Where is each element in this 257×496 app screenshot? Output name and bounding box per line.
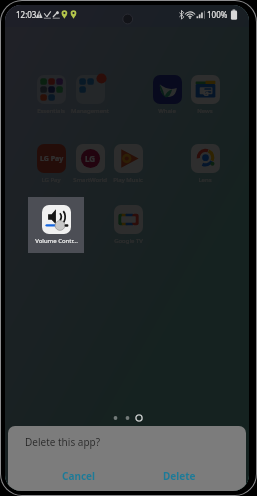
button[interactable]: Essentials — [23, 68, 79, 115]
button[interactable]: Management — [62, 68, 118, 115]
button[interactable]: Play Music — [100, 137, 156, 184]
button[interactable]: Cancel — [8, 464, 149, 488]
staticText: Cancel — [62, 469, 96, 483]
button[interactable]: LG Pay — [23, 137, 79, 184]
staticText: 100% — [207, 9, 228, 20]
staticText: LG — [85, 153, 96, 164]
button[interactable]: Volume Contr... — [28, 197, 84, 253]
staticText: G — [203, 87, 209, 98]
staticText: Lens — [198, 176, 212, 184]
staticText: SmartWorld — [73, 176, 107, 184]
staticText: LG Pay — [41, 176, 61, 184]
staticText: Management — [71, 107, 109, 115]
staticText: Whale — [158, 107, 176, 115]
button[interactable]: Whale — [139, 68, 195, 115]
button[interactable]: Lens — [177, 137, 233, 184]
staticText: Volume Contr... — [35, 237, 78, 245]
staticText: Play Music — [113, 176, 143, 184]
staticText: LG Pay — [40, 154, 64, 164]
staticText: Delete — [163, 469, 196, 483]
staticText: Essentials — [37, 107, 65, 115]
staticText: News — [197, 107, 213, 115]
button[interactable]: G — [177, 68, 233, 115]
button[interactable]: LG — [62, 137, 118, 184]
button[interactable]: Google TV — [100, 198, 156, 245]
staticText: Delete this app? — [25, 435, 101, 449]
button[interactable]: Delete — [149, 464, 209, 488]
staticText: Google TV — [114, 237, 143, 245]
staticText: 12:03 — [16, 9, 37, 20]
